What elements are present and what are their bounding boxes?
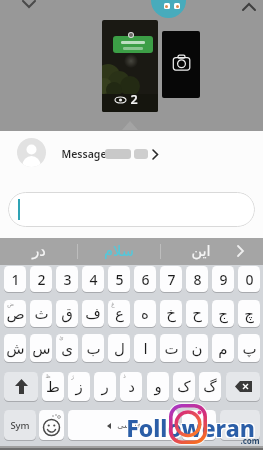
button[interactable]: 2 (102, 20, 158, 112)
staticText: ا (143, 340, 148, 357)
staticText: 0 (245, 270, 254, 289)
button[interactable]: سلام (77, 238, 160, 265)
staticText: و (154, 378, 162, 395)
staticText: 9 (219, 270, 228, 289)
button[interactable]: ج (212, 300, 234, 327)
button[interactable] (8, 192, 255, 227)
staticText: Followeran (127, 411, 256, 442)
button[interactable]: 6 (134, 266, 156, 292)
staticText: ر (101, 378, 109, 395)
button[interactable]: ک (173, 372, 195, 401)
button[interactable]: س (30, 334, 52, 362)
staticText: ب (86, 340, 101, 357)
button[interactable]: 1 (4, 266, 26, 292)
button[interactable]: 9 (212, 266, 234, 292)
button[interactable]: ح (186, 300, 208, 327)
staticText: ئ (59, 335, 64, 341)
staticText: م (218, 340, 228, 357)
staticText: سلام (104, 243, 134, 260)
button[interactable]: 7 (160, 266, 182, 292)
button[interactable]: خ (160, 300, 182, 327)
staticText: ژ (71, 373, 74, 379)
button[interactable]: ط (42, 372, 64, 401)
button[interactable] (151, 0, 186, 18)
staticText: 8 (193, 270, 202, 289)
button[interactable]: ع (108, 300, 130, 327)
button[interactable]: ب (82, 334, 104, 362)
staticText: .com (240, 435, 260, 446)
button[interactable] (182, 410, 216, 440)
staticText: 5 (115, 270, 124, 289)
button[interactable]: Sym (4, 410, 36, 440)
button[interactable]: 3 (56, 266, 78, 292)
staticText: ذ (123, 373, 126, 379)
button[interactable]: ی (56, 334, 78, 362)
staticText: ز (75, 378, 83, 395)
staticText: ع (115, 305, 124, 322)
staticText: Followeran (125, 413, 254, 444)
button[interactable]: 0 (238, 266, 260, 292)
button[interactable]: این (160, 238, 242, 265)
button[interactable]: گ (199, 372, 221, 401)
staticText: ظ (45, 373, 51, 379)
button[interactable]: د (120, 372, 142, 401)
button[interactable]: 8 (186, 266, 208, 292)
staticText: Sym (10, 419, 30, 432)
staticText: 7 (167, 270, 176, 289)
button[interactable]: ق (56, 300, 78, 327)
button[interactable]: ر (94, 372, 116, 401)
staticText: Message (61, 147, 107, 161)
staticText: 6 (141, 270, 150, 289)
staticText: Followeran (125, 411, 254, 442)
staticText: خ (166, 305, 176, 322)
staticText: ی (61, 340, 73, 357)
staticText: چ (244, 305, 254, 322)
button[interactable]: ه (134, 300, 156, 327)
staticText: ف (85, 305, 101, 322)
button[interactable]: فارسی (68, 410, 178, 440)
staticText: د (128, 378, 135, 395)
button[interactable] (39, 410, 64, 440)
button[interactable]: ص (4, 300, 26, 327)
button[interactable]: ش (4, 334, 26, 362)
staticText: ح (192, 305, 202, 322)
button[interactable]: پ (238, 334, 260, 362)
button[interactable] (162, 31, 200, 98)
staticText: س (32, 340, 51, 357)
button[interactable]: چ (238, 300, 260, 327)
staticText: فارسی (117, 421, 141, 430)
button[interactable]: ت (160, 334, 182, 362)
button[interactable]: در (0, 238, 77, 265)
staticText: Followeran (127, 413, 256, 444)
button[interactable]: ث (30, 300, 52, 327)
button[interactable]: ا (134, 334, 156, 362)
staticText: غ (111, 301, 115, 307)
staticText: ص (6, 305, 25, 322)
staticText: ج (218, 305, 228, 322)
staticText: ق (61, 305, 73, 322)
staticText: این (191, 243, 211, 260)
button[interactable]: ن (186, 334, 208, 362)
button[interactable]: ف (82, 300, 104, 327)
staticText: 3 (63, 270, 72, 289)
button[interactable] (4, 372, 38, 401)
button[interactable]: م (212, 334, 234, 362)
staticText: ن (191, 340, 203, 357)
staticText: در (32, 243, 46, 260)
staticText: ط (46, 378, 60, 395)
button[interactable]: 5 (108, 266, 130, 292)
button[interactable]: 4 (82, 266, 104, 292)
button[interactable]: ل (108, 334, 130, 362)
button[interactable]: 2 (30, 266, 52, 292)
button[interactable] (237, 245, 244, 257)
staticText: ث (34, 305, 49, 322)
button[interactable]: ز (68, 372, 90, 401)
button[interactable] (226, 372, 260, 401)
button[interactable]: و (147, 372, 169, 401)
button[interactable] (50, 138, 170, 167)
button[interactable] (220, 410, 260, 440)
staticText: ض (7, 301, 14, 307)
staticText: گ (203, 378, 217, 395)
staticText: Followeran (126, 412, 255, 443)
staticText: ل (114, 340, 125, 357)
